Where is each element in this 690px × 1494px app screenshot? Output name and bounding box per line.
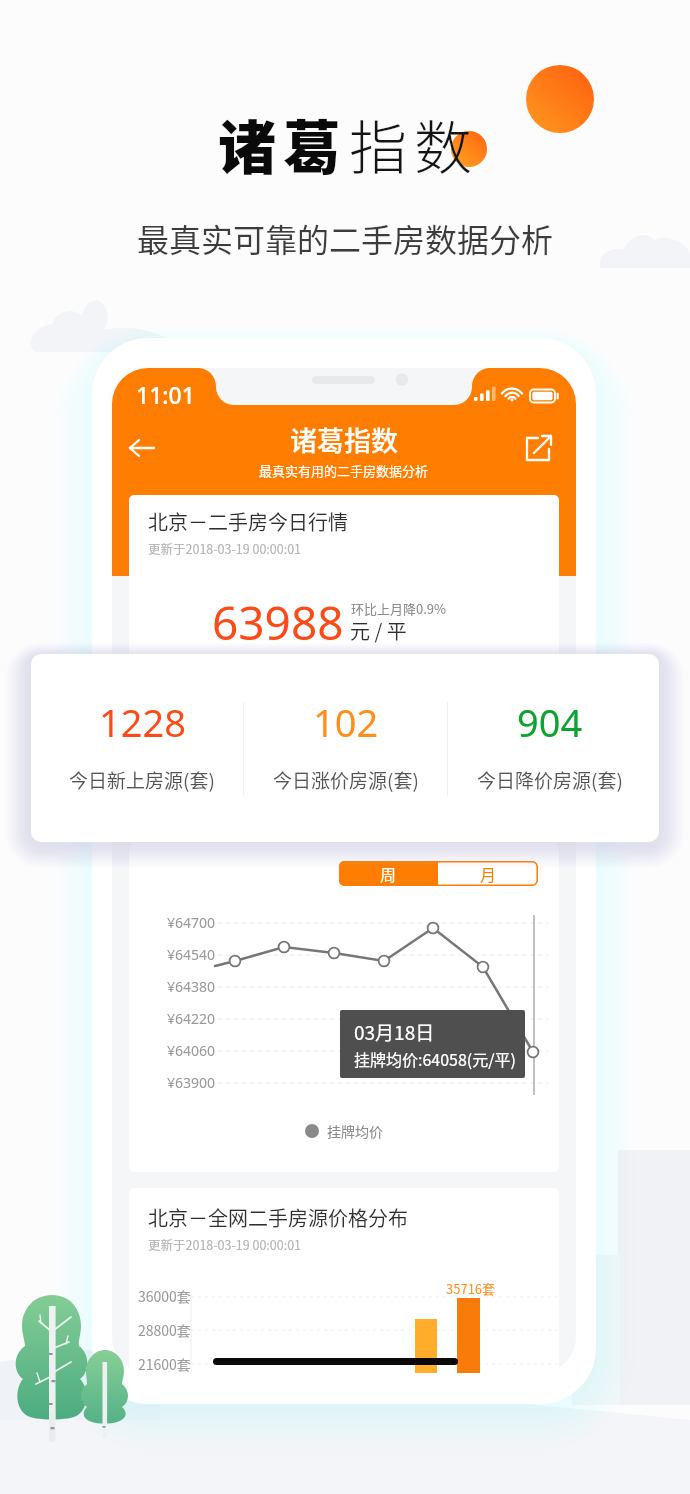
staticText: 指数 (349, 102, 480, 186)
staticText: ¥64380 (167, 977, 216, 996)
staticText: 35716套 (446, 1279, 496, 1298)
staticText: 今日降价房源(套) (477, 766, 623, 794)
staticText: 挂牌均价:64058(元/平) (354, 1047, 516, 1070)
staticText: 诸葛指数 (290, 420, 398, 459)
staticText: 周 (380, 862, 397, 885)
staticText: 21600套 (138, 1354, 191, 1373)
staticText: 北京－二手房今日行情 (148, 507, 348, 536)
staticText: 今日新上房源(套) (69, 766, 215, 794)
staticText: 元 / 平 (350, 616, 407, 645)
staticText: 最真实有用的二手房数据分析 (259, 461, 429, 480)
staticText: 36000套 (138, 1286, 191, 1306)
staticText: ¥64700 (167, 913, 216, 932)
staticText: 诸葛 (218, 102, 349, 186)
staticText: 环比上月降0.9% (351, 599, 447, 618)
staticText: 更新于2018-03-19 00:00:01 (148, 1235, 302, 1253)
staticText: 月 (480, 862, 497, 885)
staticText: 11:01 (136, 379, 195, 410)
button[interactable]: 周 (339, 861, 438, 886)
staticText: 28800套 (138, 1320, 191, 1340)
staticText: 最真实可靠的二手房数据分析 (137, 215, 554, 261)
staticText: ¥64540 (167, 945, 216, 964)
staticText: 更新于2018-03-19 00:00:01 (148, 539, 302, 557)
button[interactable]: 102 (246, 654, 446, 842)
button[interactable]: Share (517, 428, 559, 470)
staticText: 63988 (212, 591, 344, 654)
staticText: 今日涨价房源(套) (273, 766, 419, 794)
staticText: 挂牌均价 (327, 1121, 383, 1141)
button[interactable]: Back (118, 424, 166, 472)
staticText: 北京－全网二手房源价格分布 (148, 1203, 408, 1232)
staticText: 03月18日 (354, 1018, 435, 1046)
staticText: 102 (313, 696, 379, 748)
button[interactable]: 月 (438, 861, 538, 886)
staticText: ¥64060 (167, 1041, 216, 1060)
staticText: 1228 (99, 696, 186, 748)
staticText: ¥64220 (167, 1009, 216, 1028)
staticText: ¥63900 (167, 1073, 216, 1092)
button[interactable]: 904 (450, 654, 650, 842)
button[interactable]: 1228 (42, 654, 242, 842)
staticText: 904 (517, 696, 583, 748)
